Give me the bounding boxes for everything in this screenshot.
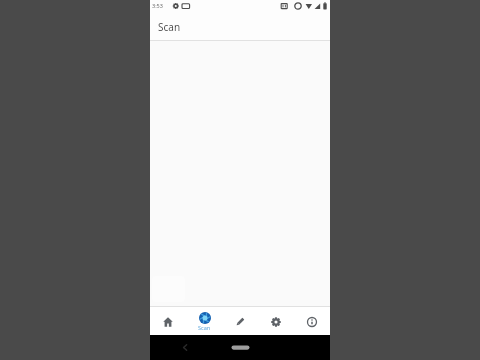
button[interactable] bbox=[294, 307, 330, 335]
staticText: Scan bbox=[198, 324, 211, 331]
button[interactable]: Scan bbox=[186, 307, 222, 335]
button[interactable] bbox=[258, 307, 294, 335]
button[interactable] bbox=[222, 307, 258, 335]
staticText: Scan bbox=[158, 20, 181, 34]
staticText: 3:53 bbox=[152, 2, 163, 9]
button[interactable] bbox=[150, 307, 186, 335]
